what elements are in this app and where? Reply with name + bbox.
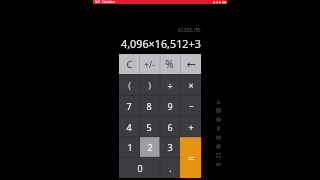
staticText: 1: [127, 141, 133, 153]
staticText: (: [128, 79, 131, 91]
staticText: .: [169, 162, 172, 174]
button[interactable]: .: [160, 157, 180, 178]
staticText: 67,633,155: [178, 27, 201, 33]
button[interactable]: ×: [180, 74, 201, 95]
button[interactable]: 3: [160, 137, 180, 157]
staticText: 7: [126, 100, 132, 112]
staticText: 9: [167, 100, 173, 112]
button[interactable]: %: [159, 54, 180, 74]
staticText: 6: [167, 121, 173, 133]
button[interactable]: App shortcut 4: [211, 124, 225, 133]
button[interactable]: 6: [159, 116, 180, 137]
button[interactable]: −: [180, 95, 201, 116]
button[interactable]: 7: [119, 95, 139, 116]
staticText: +/-: [144, 59, 155, 70]
button[interactable]: C: [119, 54, 139, 74]
staticText: 9:41: [95, 0, 101, 4]
staticText: 4,096×16,512+3: [121, 36, 201, 49]
staticText: C: [126, 58, 133, 71]
staticText: ÷: [167, 79, 173, 91]
staticText: %: [165, 57, 174, 71]
button[interactable]: App shortcut 7: [211, 151, 225, 160]
staticText: 3: [167, 141, 173, 153]
button[interactable]: App shortcut 1: [211, 97, 225, 106]
staticText: −: [188, 100, 194, 112]
staticText: Calculator: [102, 0, 115, 4]
button[interactable]: 5: [139, 116, 159, 137]
staticText: ): [148, 79, 151, 91]
button[interactable]: (: [119, 74, 139, 95]
staticText: 4: [126, 121, 132, 133]
button[interactable]: =: [180, 137, 201, 178]
staticText: 8: [146, 100, 152, 112]
button[interactable]: 8: [139, 95, 159, 116]
staticText: ×: [188, 79, 194, 91]
button[interactable]: App shortcut 6: [211, 142, 225, 151]
button[interactable]: ÷: [159, 74, 180, 95]
staticText: =: [188, 151, 194, 165]
button[interactable]: App shortcut 2: [211, 106, 225, 115]
button[interactable]: 2: [140, 137, 160, 157]
staticText: +: [188, 121, 194, 133]
button[interactable]: App shortcut 3: [211, 115, 225, 124]
button[interactable]: 9: [159, 95, 180, 116]
button[interactable]: ←: [180, 54, 201, 74]
staticText: 0: [137, 162, 143, 174]
button[interactable]: 1: [119, 137, 140, 157]
button[interactable]: App shortcut 8: [211, 160, 225, 169]
button[interactable]: 0: [119, 157, 160, 178]
button[interactable]: +: [180, 116, 201, 137]
staticText: 5: [146, 121, 152, 133]
button[interactable]: 4: [119, 116, 139, 137]
staticText: 2: [147, 141, 153, 153]
button[interactable]: App shortcut 5: [211, 133, 225, 142]
button[interactable]: +/-: [139, 54, 159, 74]
staticText: ←: [186, 58, 196, 71]
button[interactable]: ): [139, 74, 159, 95]
